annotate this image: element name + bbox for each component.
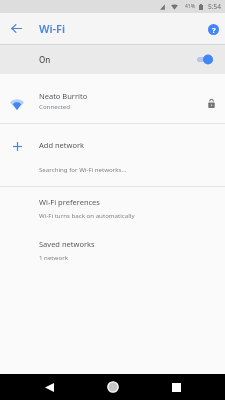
button[interactable]: Back: [36, 374, 62, 400]
staticText: Wi-Fi turns back on automatically: [39, 211, 135, 219]
staticText: Add network: [39, 140, 85, 150]
button[interactable]: Navigate up: [1, 13, 31, 43]
staticText: Wi-Fi preferences: [39, 197, 100, 207]
staticText: 5:54: [208, 2, 221, 11]
button[interactable]: On: [0, 45, 225, 74]
button[interactable]: Saved networks: [0, 229, 225, 271]
staticText: Wi-Fi: [39, 21, 66, 36]
staticText: Neato Burrito: [39, 91, 88, 101]
button[interactable]: Home: [100, 374, 126, 400]
other: Secured network: [208, 99, 215, 108]
button[interactable]: Help: [198, 14, 225, 44]
button[interactable]: Recent apps: [163, 374, 189, 400]
button[interactable]: Add network: [0, 124, 225, 167]
staticText: 41%: [185, 3, 195, 10]
staticText: ?: [212, 25, 216, 35]
button[interactable]: Neato Burrito: [0, 74, 225, 123]
staticText: Searching for Wi-Fi networks...: [39, 165, 127, 173]
staticText: 1 network: [39, 253, 68, 261]
staticText: On: [39, 54, 51, 65]
staticText: Saved networks: [39, 239, 95, 249]
button[interactable]: Wi-Fi preferences: [0, 187, 225, 229]
staticText: Connected: [39, 102, 71, 110]
